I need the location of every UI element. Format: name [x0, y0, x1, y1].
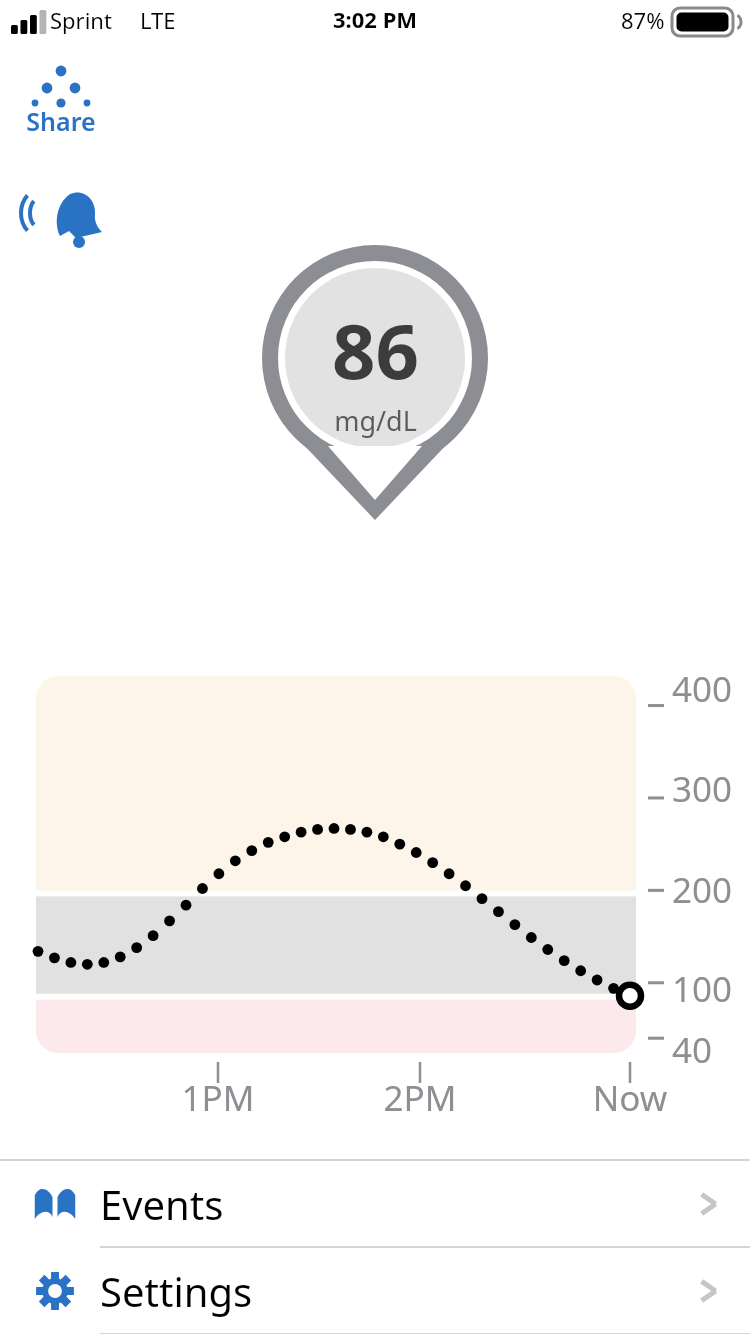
staticText: 2PM: [360, 1074, 480, 1122]
button[interactable]: 86: [250, 240, 500, 530]
button[interactable]: Share: [20, 64, 102, 138]
staticText: Sprint: [50, 5, 112, 35]
staticText: 87%: [621, 5, 665, 35]
staticText: 100: [672, 965, 733, 1013]
staticText: 200: [672, 866, 733, 914]
button[interactable]: Alerts: [20, 186, 98, 244]
staticText: Events: [100, 1177, 224, 1231]
button[interactable]: Events: [0, 1161, 750, 1246]
staticText: 400: [672, 665, 733, 713]
staticText: 300: [672, 765, 733, 813]
staticText: Settings: [100, 1264, 253, 1318]
staticText: 40: [672, 1026, 713, 1074]
staticText: 86: [332, 298, 419, 402]
staticText: Share: [20, 104, 102, 138]
staticText: Now: [570, 1074, 690, 1122]
staticText: LTE: [140, 5, 176, 35]
staticText: mg/dL: [334, 402, 417, 439]
button[interactable]: Settings: [0, 1248, 750, 1333]
staticText: 3:02 PM: [333, 4, 418, 34]
staticText: 1PM: [158, 1074, 278, 1122]
